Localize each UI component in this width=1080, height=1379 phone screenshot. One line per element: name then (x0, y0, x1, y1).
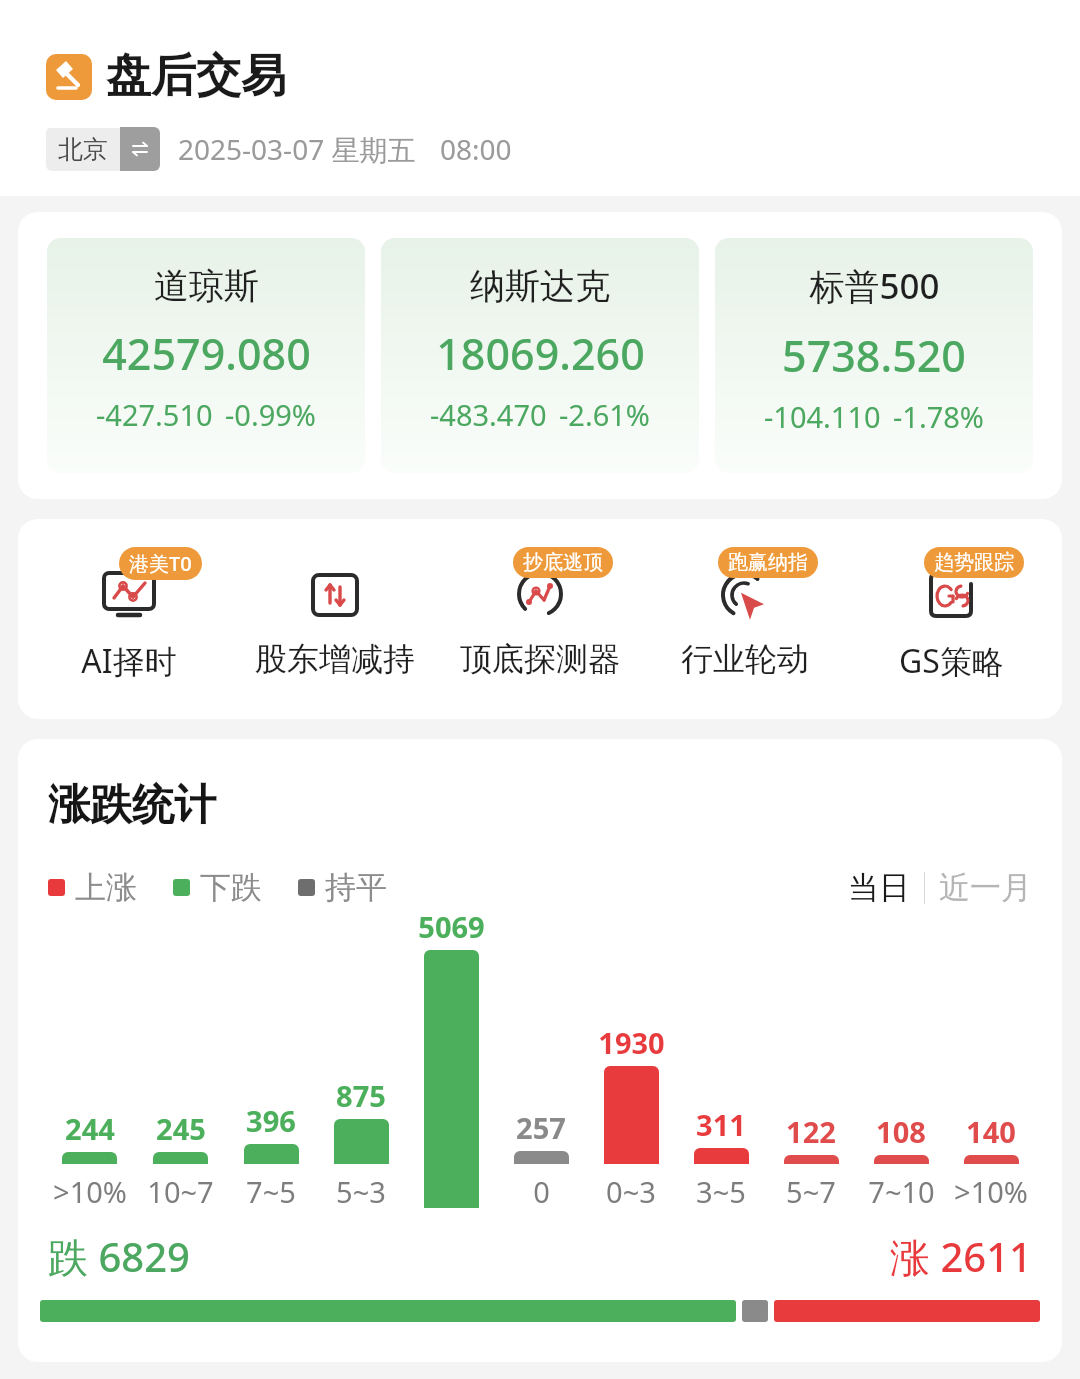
button[interactable]: 纳斯达克 (381, 238, 699, 473)
staticText: 3~5 (696, 1172, 746, 1211)
staticText: 5069 (418, 907, 485, 946)
staticText: 抄底逃顶 (523, 550, 603, 575)
staticText: 0 (533, 1172, 550, 1211)
staticText: 行业轮动 (681, 639, 809, 679)
button[interactable]: 趋势跟踪 (857, 543, 1045, 687)
staticText: 7~10 (868, 1172, 935, 1211)
staticText: 5~3 (336, 1172, 386, 1211)
staticText: 7~5 (246, 1172, 296, 1211)
staticText: 0~3 (606, 1172, 656, 1211)
button[interactable]: 标普500 (715, 238, 1033, 473)
button[interactable]: 抄底逃顶 (446, 543, 634, 683)
staticText: 跑赢纳指 (728, 550, 808, 575)
staticText: -483.470 (430, 395, 547, 434)
staticText: 持平 (325, 868, 387, 907)
staticText: 盘后交易 (106, 48, 286, 105)
staticText: 257 (516, 1108, 566, 1147)
staticText: 5~7 (786, 1172, 836, 1211)
staticText: 上涨 (75, 868, 137, 907)
staticText: -427.510 (96, 395, 213, 434)
staticText: 近一月 (939, 868, 1032, 907)
staticText: 港美T0 (129, 550, 192, 577)
button[interactable]: 当日 (848, 868, 910, 907)
staticText: 股东增减持 (255, 639, 415, 679)
staticText: 122 (786, 1112, 836, 1151)
staticText: 道琼斯 (154, 264, 259, 308)
other: 盘后交易 (46, 54, 92, 100)
staticText: >10% (53, 1172, 127, 1211)
staticText: 2025-03-07 星期五 (178, 130, 416, 168)
staticText: 108 (876, 1112, 926, 1151)
staticText: 当日 (848, 868, 910, 907)
staticText: 245 (156, 1109, 206, 1148)
button[interactable]: 股东增减持 (241, 543, 429, 683)
button[interactable]: 近一月 (939, 868, 1032, 907)
staticText: 下跌 (200, 868, 262, 907)
staticText: 10~7 (147, 1172, 214, 1211)
staticText: 140 (966, 1112, 1016, 1151)
staticText: 18069.260 (436, 324, 645, 383)
staticText: 顶底探测器 (460, 639, 620, 679)
staticText: 趋势跟踪 (934, 550, 1014, 575)
staticText: 标普500 (809, 262, 940, 310)
button[interactable]: 道琼斯 (47, 238, 365, 473)
staticText: -1.78% (893, 397, 984, 436)
staticText: 396 (246, 1101, 296, 1140)
staticText: 1930 (598, 1023, 665, 1062)
staticText: 42579.080 (102, 324, 311, 383)
staticText: -0.99% (225, 395, 316, 434)
staticText: 涨跌统计 (48, 779, 216, 832)
staticText: 北京 (58, 134, 108, 165)
button[interactable]: 北京 (46, 127, 160, 171)
staticText: GS策略 (899, 639, 1004, 683)
staticText: 311 (696, 1105, 746, 1144)
staticText: 08:00 (440, 130, 512, 168)
staticText: >10% (954, 1172, 1028, 1211)
button[interactable]: 港美T0 (35, 543, 223, 687)
staticText: 244 (65, 1109, 115, 1148)
staticText: -104.110 (764, 397, 881, 436)
staticText: 875 (336, 1076, 386, 1115)
staticText: 涨 2611 (890, 1229, 1032, 1284)
staticText: 跌 6829 (48, 1229, 190, 1284)
staticText: 5738.520 (782, 326, 966, 385)
button[interactable]: 跑赢纳指 (651, 543, 839, 683)
staticText: -2.61% (559, 395, 650, 434)
staticText: AI择时 (81, 639, 177, 683)
staticText: 纳斯达克 (470, 264, 610, 308)
